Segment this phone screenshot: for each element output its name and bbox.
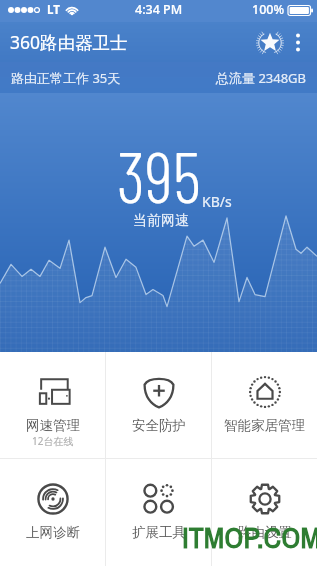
staticText: LT: [47, 2, 60, 18]
button[interactable]: 智能家居管理: [212, 352, 317, 458]
staticText: 路由设置: [238, 524, 292, 541]
staticText: 12台在线: [32, 434, 74, 448]
staticText: 路由正常工作 35天: [11, 69, 121, 87]
staticText: 4:34 PM: [135, 1, 183, 18]
staticText: 安全防护: [132, 417, 186, 434]
staticText: 上网诊断: [26, 524, 80, 541]
staticText: 网速管理: [26, 417, 80, 434]
staticText: KB/s: [202, 192, 232, 211]
button[interactable]: 扩展工具: [106, 459, 211, 566]
button[interactable]: 路由设置: [212, 459, 317, 566]
button[interactable]: 网速管理: [0, 352, 105, 458]
staticText: 当前网速: [133, 212, 189, 230]
staticText: 总流量 2348GB: [216, 69, 307, 87]
staticText: ITMOP.COM: [182, 517, 317, 557]
staticText: 100%: [252, 1, 285, 18]
button[interactable]: More options: [285, 29, 311, 55]
staticText: 扩展工具: [132, 524, 186, 541]
staticText: 智能家居管理: [224, 417, 305, 434]
button[interactable]: 安全防护: [106, 352, 211, 458]
staticText: 395: [117, 133, 201, 217]
button[interactable]: 上网诊断: [0, 459, 105, 566]
button[interactable]: Rewards: [254, 26, 286, 58]
staticText: 360路由器卫士: [10, 30, 128, 54]
